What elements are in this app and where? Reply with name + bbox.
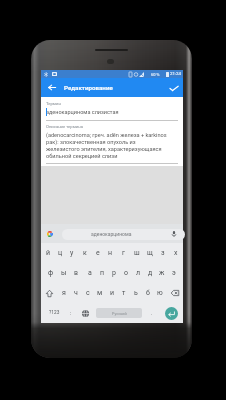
button[interactable]: а bbox=[83, 263, 96, 283]
staticText: 21:24 bbox=[170, 71, 181, 76]
staticText: ж bbox=[159, 269, 165, 277]
staticText: т bbox=[122, 289, 126, 297]
staticText: э bbox=[172, 269, 176, 277]
staticText: и bbox=[110, 289, 115, 297]
button[interactable]: Русский bbox=[96, 308, 142, 318]
staticText: (adenocarcinoma; греч. adēn железа + kar… bbox=[46, 132, 170, 160]
button[interactable]: я bbox=[58, 283, 70, 303]
staticText: ч bbox=[74, 289, 78, 297]
button[interactable]: ч bbox=[70, 283, 82, 303]
staticText: ь bbox=[134, 289, 138, 297]
staticText: д bbox=[148, 269, 153, 277]
staticText: ю bbox=[157, 289, 163, 297]
staticText: аденокарцинома слизистая bbox=[46, 109, 119, 115]
button[interactable]: ь bbox=[130, 283, 142, 303]
button[interactable]: Google search bbox=[45, 229, 55, 239]
button[interactable]: Change language bbox=[79, 303, 91, 323]
staticText: х bbox=[174, 249, 178, 257]
button[interactable]: э bbox=[168, 263, 180, 283]
staticText: Русский bbox=[112, 311, 127, 315]
button[interactable]: Shift bbox=[41, 283, 57, 303]
button[interactable]: к bbox=[78, 243, 91, 263]
button[interactable]: о bbox=[120, 263, 132, 283]
button[interactable]: Backspace bbox=[167, 283, 183, 303]
button[interactable]: б bbox=[142, 283, 154, 303]
staticText: к bbox=[83, 249, 87, 257]
button[interactable]: Back bbox=[44, 80, 59, 95]
staticText: Описание термина bbox=[46, 124, 83, 129]
button[interactable]: ш bbox=[130, 243, 143, 263]
button[interactable]: ц bbox=[54, 243, 66, 263]
button[interactable]: л bbox=[132, 263, 144, 283]
button[interactable]: н bbox=[104, 243, 117, 263]
button[interactable]: й bbox=[42, 243, 54, 263]
staticText: ц bbox=[58, 249, 63, 257]
staticText: м bbox=[97, 289, 103, 297]
button[interactable]: у bbox=[66, 243, 78, 263]
button[interactable]: г bbox=[117, 243, 130, 263]
button[interactable]: аденокарцинома bbox=[91, 231, 132, 237]
staticText: з bbox=[161, 249, 165, 257]
staticText: 60 % bbox=[151, 72, 160, 77]
button[interactable]: Enter bbox=[160, 303, 182, 323]
staticText: н bbox=[108, 249, 113, 257]
staticText: а bbox=[88, 269, 92, 277]
staticText: й bbox=[46, 249, 51, 257]
staticText: ш bbox=[134, 249, 140, 257]
staticText: б bbox=[146, 289, 150, 297]
staticText: . bbox=[151, 310, 153, 316]
staticText: в bbox=[74, 269, 79, 277]
staticText: я bbox=[62, 289, 66, 297]
staticText: е bbox=[96, 249, 100, 257]
button[interactable]: з bbox=[156, 243, 169, 263]
staticText: ?123 bbox=[49, 310, 60, 316]
button[interactable]: и bbox=[106, 283, 118, 303]
button[interactable]: ?123 bbox=[43, 303, 65, 323]
staticText: ф bbox=[48, 269, 54, 277]
button[interactable]: в bbox=[70, 263, 83, 283]
button[interactable]: ж bbox=[156, 263, 168, 283]
button[interactable]: щ bbox=[143, 243, 156, 263]
button[interactable]: м bbox=[94, 283, 106, 303]
staticText: п bbox=[100, 269, 105, 277]
staticText: щ bbox=[147, 249, 153, 257]
staticText: о bbox=[124, 269, 128, 277]
staticText: Термин bbox=[46, 101, 61, 106]
staticText: г bbox=[122, 249, 125, 257]
button[interactable]: ф bbox=[44, 263, 57, 283]
staticText: Редактирование bbox=[64, 84, 113, 91]
button[interactable]: п bbox=[96, 263, 108, 283]
staticText: ы bbox=[61, 269, 67, 277]
button[interactable]: р bbox=[108, 263, 120, 283]
button[interactable]: х bbox=[169, 243, 182, 263]
button[interactable]: т bbox=[118, 283, 130, 303]
button[interactable]: с bbox=[82, 283, 94, 303]
staticText: с bbox=[86, 289, 90, 297]
button[interactable]: : bbox=[65, 303, 77, 323]
staticText: : bbox=[70, 310, 72, 316]
button[interactable]: Voice input bbox=[169, 229, 179, 239]
staticText: р bbox=[112, 269, 116, 277]
button[interactable]: Save bbox=[166, 80, 182, 96]
staticText: у bbox=[70, 249, 74, 257]
button[interactable]: е bbox=[91, 243, 104, 263]
button[interactable]: д bbox=[144, 263, 156, 283]
button[interactable]: ы bbox=[57, 263, 70, 283]
staticText: л bbox=[136, 269, 141, 277]
button[interactable]: ю bbox=[154, 283, 166, 303]
